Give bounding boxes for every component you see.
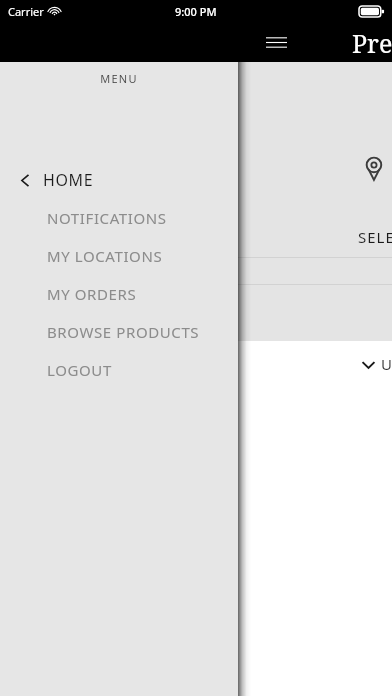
button[interactable]: MY ORDERS xyxy=(0,279,238,309)
staticText: BROWSE PRODUCTS xyxy=(47,322,200,342)
staticText: Pre xyxy=(352,26,392,60)
button[interactable]: Menu xyxy=(263,29,289,55)
button[interactable]: HOME xyxy=(0,164,238,196)
button[interactable]: NOTIFICATIONS xyxy=(0,203,238,233)
button[interactable]: LOGOUT xyxy=(0,355,238,385)
staticText: MENU xyxy=(0,71,238,86)
staticText: NOTIFICATIONS xyxy=(47,208,167,228)
staticText: LOGOUT xyxy=(47,360,112,380)
staticText: 9:00 PM xyxy=(175,4,217,19)
staticText: U xyxy=(381,354,392,374)
button[interactable]: MY LOCATIONS xyxy=(0,241,238,271)
button[interactable]: Expand xyxy=(360,349,392,379)
staticText: HOME xyxy=(43,169,94,191)
staticText: Carrier xyxy=(8,4,44,19)
staticText: MY LOCATIONS xyxy=(47,246,163,266)
button[interactable]: BROWSE PRODUCTS xyxy=(0,317,238,347)
staticText: MY ORDERS xyxy=(47,284,137,304)
staticText: SELECT xyxy=(358,227,392,247)
other: Expand xyxy=(360,356,377,373)
button[interactable]: Location xyxy=(362,154,388,180)
